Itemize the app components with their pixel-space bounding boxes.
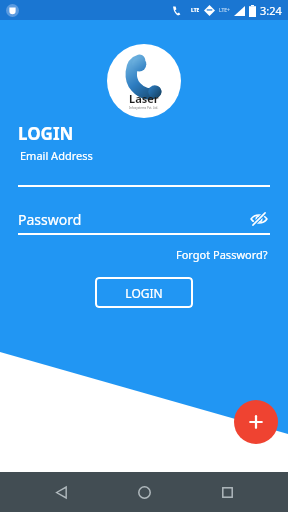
staticText: Forgot Password? — [176, 247, 268, 262]
staticText: LOGIN — [125, 285, 163, 301]
staticText: Laser — [129, 91, 159, 106]
button[interactable]: Home — [122, 472, 166, 512]
button[interactable]: LOGIN — [95, 277, 193, 308]
staticText: Password — [18, 210, 82, 229]
staticText: LOGIN — [18, 122, 74, 145]
button[interactable]: Email Address — [18, 148, 270, 187]
button[interactable]: Forgot Password? — [174, 246, 270, 263]
staticText: Email Address — [20, 148, 93, 163]
staticText: LTE+ — [219, 7, 230, 14]
button[interactable]: Password — [18, 208, 270, 235]
button[interactable]: Back — [39, 472, 83, 512]
button[interactable]: Toggle password visibility — [248, 208, 270, 230]
staticText: Infosystems Pvt. Ltd. — [129, 106, 159, 110]
button[interactable]: Recent apps — [205, 472, 249, 512]
staticText: LTE — [191, 7, 200, 14]
button[interactable]: Add — [234, 400, 278, 444]
staticText: 3:24 — [260, 3, 282, 18]
